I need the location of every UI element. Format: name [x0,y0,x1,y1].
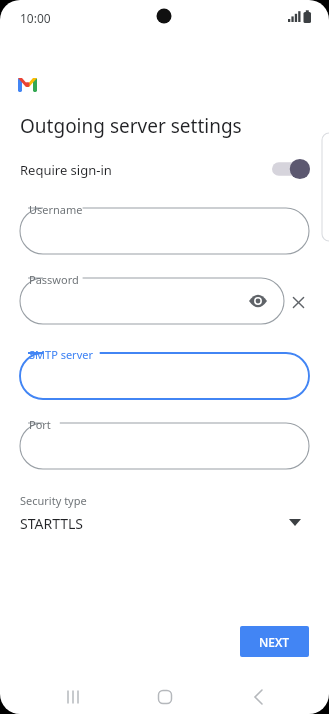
staticText: Port [29,417,51,432]
staticText: Require sign-in [20,161,112,179]
button[interactable] [20,423,309,469]
staticText: 10:00 [20,10,51,26]
staticText: Security type [20,493,87,508]
button[interactable] [20,208,309,254]
staticText: NEXT [259,634,290,650]
button[interactable] [20,353,309,399]
button[interactable]: Require sign-in toggle [272,158,310,180]
staticText: STARTTLS [20,514,84,533]
button[interactable]: Back [243,683,271,711]
staticText: SMTP server [29,347,93,362]
button[interactable]: Show password [248,291,268,311]
staticText: Username [29,202,83,217]
staticText: Outgoing server settings [20,113,242,139]
button[interactable]: Home [151,683,179,711]
button[interactable]: Recent apps [59,683,87,711]
button[interactable] [12,488,317,540]
button[interactable]: NEXT [240,626,309,657]
button[interactable] [20,278,284,324]
staticText: Password [29,272,79,287]
button[interactable]: Clear password [290,294,307,311]
